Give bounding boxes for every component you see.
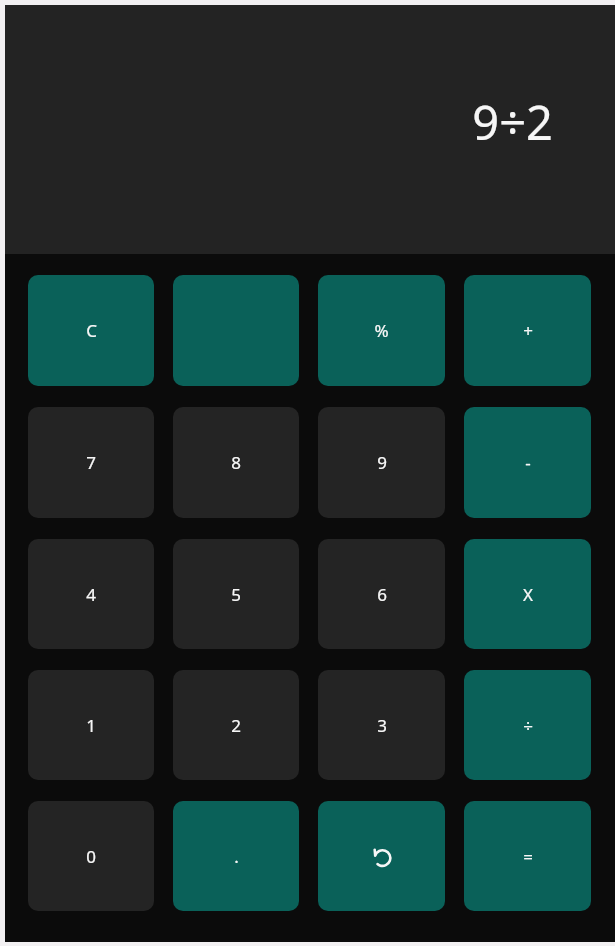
staticText: 9÷2 [472,90,553,154]
staticText: X [523,583,533,606]
staticText: % [374,319,389,342]
staticText: . [234,845,239,868]
button[interactable]: Backspace [318,801,445,911]
staticText: + [523,319,533,342]
staticText: 9 [377,451,387,474]
staticText: 1 [86,714,96,737]
button[interactable]: = [464,801,591,911]
button[interactable]: 7 [28,407,154,518]
staticText: 6 [377,583,387,606]
button[interactable]: + [464,275,591,386]
button[interactable]: ÷ [464,670,591,780]
button[interactable]: 6 [318,539,445,649]
staticText: - [525,451,531,474]
button[interactable]: - [464,407,591,518]
staticText: 5 [231,583,241,606]
button[interactable]: 2 [173,670,299,780]
button[interactable]: 9 [318,407,445,518]
staticText: 8 [231,451,241,474]
staticText: ÷ [523,714,533,737]
staticText: 4 [86,583,96,606]
button[interactable]: % [318,275,445,386]
staticText: 3 [377,714,387,737]
button[interactable]: 5 [173,539,299,649]
staticText: 7 [86,451,96,474]
button[interactable]: X [464,539,591,649]
button[interactable]: C [28,275,154,386]
button[interactable]: 3 [318,670,445,780]
staticText: 0 [86,845,96,868]
button[interactable]: 4 [28,539,154,649]
button[interactable]: 1 [28,670,154,780]
button[interactable]: 8 [173,407,299,518]
button[interactable]: 0 [28,801,154,911]
button[interactable]: . [173,801,299,911]
staticText: = [523,845,533,868]
staticText: C [86,319,97,342]
button[interactable]: Blank [173,275,299,386]
staticText: 2 [231,714,241,737]
